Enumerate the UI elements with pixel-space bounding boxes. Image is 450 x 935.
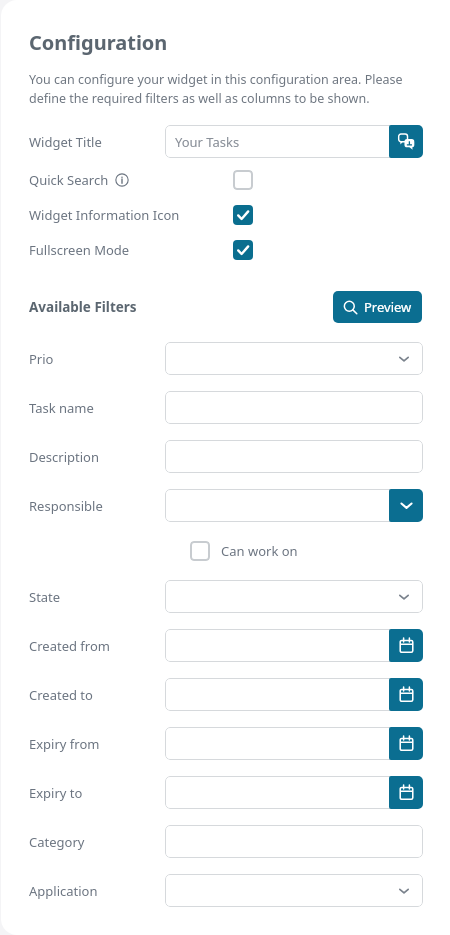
staticText: Created to xyxy=(29,686,93,704)
button[interactable]: Text field xyxy=(165,825,423,858)
button[interactable]: Pick created from date xyxy=(389,629,423,662)
staticText: Responsible xyxy=(29,497,103,515)
button[interactable]: Information xyxy=(115,173,129,187)
staticText: Preview xyxy=(364,298,412,316)
staticText: Created from xyxy=(29,637,110,655)
button[interactable]: Text field xyxy=(165,440,423,473)
staticText: Task name xyxy=(29,399,94,417)
button[interactable]: Pick created to date xyxy=(389,678,423,711)
button[interactable]: Input xyxy=(165,489,395,522)
staticText: Widget Title xyxy=(29,133,102,151)
staticText: Expiry from xyxy=(29,735,100,753)
button[interactable]: Pick expiry to date xyxy=(389,776,423,809)
button[interactable]: Dropdown xyxy=(165,580,423,613)
button[interactable]: Input xyxy=(165,727,395,760)
button[interactable]: Can work on xyxy=(190,541,298,561)
button[interactable]: Input xyxy=(165,125,395,158)
staticText: Can work on xyxy=(221,542,298,560)
staticText: Prio xyxy=(29,350,54,368)
button[interactable]: Preview xyxy=(333,291,422,323)
button[interactable]: Dropdown xyxy=(165,342,423,375)
staticText: Category xyxy=(29,833,85,851)
button[interactable]: Dropdown xyxy=(165,874,423,907)
button[interactable]: Input xyxy=(165,629,395,662)
staticText: You can configure your widget in this co… xyxy=(29,71,424,107)
staticText: Widget Information Icon xyxy=(29,206,180,224)
button[interactable]: Fullscreen Mode xyxy=(233,240,253,260)
staticText: Quick Search xyxy=(29,171,109,189)
button[interactable]: Input xyxy=(165,776,395,809)
button[interactable]: Input xyxy=(165,678,395,711)
button[interactable]: Open list xyxy=(389,489,423,522)
staticText: Description xyxy=(29,448,99,466)
staticText: Fullscreen Mode xyxy=(29,241,130,259)
button[interactable]: Quick Search xyxy=(233,170,253,190)
button[interactable]: Widget Information Icon xyxy=(233,205,253,225)
staticText: Configuration xyxy=(29,29,168,56)
staticText: Application xyxy=(29,882,98,900)
staticText: State xyxy=(29,588,61,606)
button[interactable]: Translate xyxy=(389,125,423,158)
staticText: Available Filters xyxy=(29,298,137,316)
button[interactable]: Pick expiry from date xyxy=(389,727,423,760)
staticText: Expiry to xyxy=(29,784,83,802)
button[interactable]: Text field xyxy=(165,391,423,424)
staticText: Your Tasks xyxy=(175,133,240,151)
